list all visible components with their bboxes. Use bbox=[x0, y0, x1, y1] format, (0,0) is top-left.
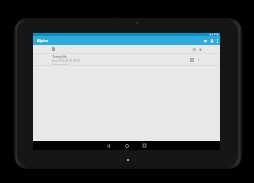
button[interactable]: Preview bbox=[189, 54, 195, 65]
staticText: Tempfile bbox=[52, 54, 67, 59]
button[interactable]: More options bbox=[214, 36, 220, 45]
button[interactable]: Contrast bbox=[33, 45, 220, 53]
button[interactable]: Contrast bbox=[191, 45, 197, 53]
button[interactable]: Lock bbox=[209, 36, 214, 45]
button[interactable]: Delete bbox=[197, 45, 203, 53]
staticText: /storage/emul bbox=[52, 63, 70, 65]
button[interactable]: More bbox=[195, 54, 201, 65]
button[interactable]: Recent apps bbox=[140, 141, 149, 150]
button[interactable]: Tempfile bbox=[33, 54, 220, 65]
staticText: time: 2016-01-01 00:00 bbox=[52, 59, 80, 63]
button[interactable]: Back bbox=[104, 141, 113, 150]
button[interactable]: Favorite bbox=[202, 36, 209, 45]
button[interactable]: Home bbox=[122, 141, 131, 150]
staticText: Alpha bbox=[37, 38, 48, 43]
